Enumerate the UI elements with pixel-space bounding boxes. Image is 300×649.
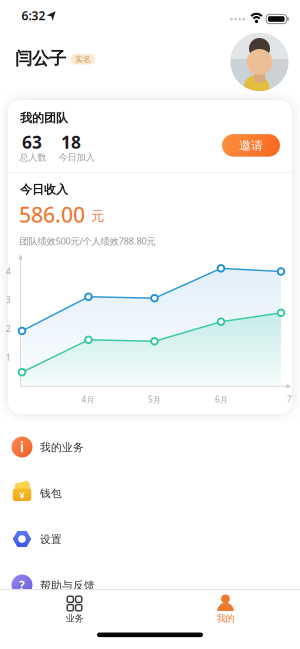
staticText: 586.00 (19, 200, 85, 229)
staticText: 邀请 (239, 138, 263, 153)
staticText: 5月 (148, 394, 161, 405)
staticText: 业务 (65, 613, 83, 624)
staticText: 总人数 (19, 152, 46, 163)
staticText: 元 (91, 208, 104, 224)
staticText: 我的团队 (20, 111, 68, 125)
staticText: 帮助与反馈 (40, 579, 95, 592)
staticText: 4月 (81, 394, 94, 405)
staticText: 实名 (75, 54, 91, 64)
staticText: 2 (6, 324, 11, 334)
staticText: 6月 (215, 394, 228, 405)
staticText: 今日收入 (20, 182, 68, 197)
button[interactable]: 邀请 (222, 134, 280, 157)
staticText: 6:32 (21, 7, 45, 23)
staticText: 4 (6, 266, 11, 277)
button[interactable]: ? (0, 562, 300, 608)
staticText: 我的业务 (40, 441, 84, 454)
button[interactable]: ¥ (0, 470, 300, 516)
staticText: 我的 (216, 613, 234, 624)
staticText: 今日加入 (58, 152, 94, 163)
staticText: 63 (22, 130, 42, 153)
button[interactable]: 业务 (0, 590, 150, 649)
staticText: 3 (6, 295, 11, 305)
button[interactable]: 头像 (230, 33, 288, 91)
staticText: 设置 (40, 533, 62, 546)
staticText: 钱包 (40, 487, 62, 500)
staticText: ? (19, 577, 25, 593)
button[interactable]: 我的 (150, 590, 300, 649)
staticText: 1 (6, 352, 11, 363)
staticText: ¥ (19, 489, 24, 501)
staticText: 7 (287, 394, 292, 405)
staticText: 团队绩效500元/个人绩效788.80元 (19, 235, 155, 247)
button[interactable]: i (0, 424, 300, 470)
staticText: i (20, 438, 24, 456)
button[interactable]: 设置 (0, 516, 300, 562)
staticText: 闫公子 (15, 48, 66, 69)
staticText: 18 (61, 130, 81, 153)
